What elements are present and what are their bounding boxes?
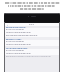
button[interactable] [5, 28, 59, 31]
button[interactable] [5, 49, 59, 52]
button[interactable] [5, 34, 59, 37]
button[interactable] [5, 52, 59, 55]
button[interactable] [5, 43, 59, 46]
button[interactable] [5, 40, 59, 43]
button[interactable]: Back [6, 24, 8, 26]
button[interactable] [5, 31, 59, 34]
